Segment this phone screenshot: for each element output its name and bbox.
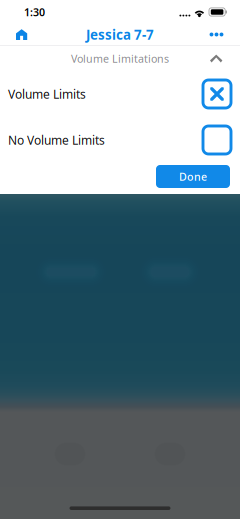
- staticText: Volume Limitations: [71, 51, 169, 66]
- staticText: 1:30: [24, 5, 45, 19]
- staticText: Jessica 7-7: [86, 26, 154, 43]
- button[interactable]: Home: [0, 24, 35, 45]
- button[interactable]: Volume Limits: [0, 71, 240, 117]
- staticText: Done: [179, 169, 207, 184]
- staticText: No Volume Limits: [8, 132, 105, 148]
- button[interactable]: No Volume Limits: [0, 117, 240, 163]
- button[interactable]: Done: [156, 165, 230, 188]
- staticText: Volume Limits: [8, 86, 86, 102]
- button[interactable]: Collapse Volume Limitations: [202, 48, 240, 69]
- button[interactable]: More options: [201, 24, 240, 44]
